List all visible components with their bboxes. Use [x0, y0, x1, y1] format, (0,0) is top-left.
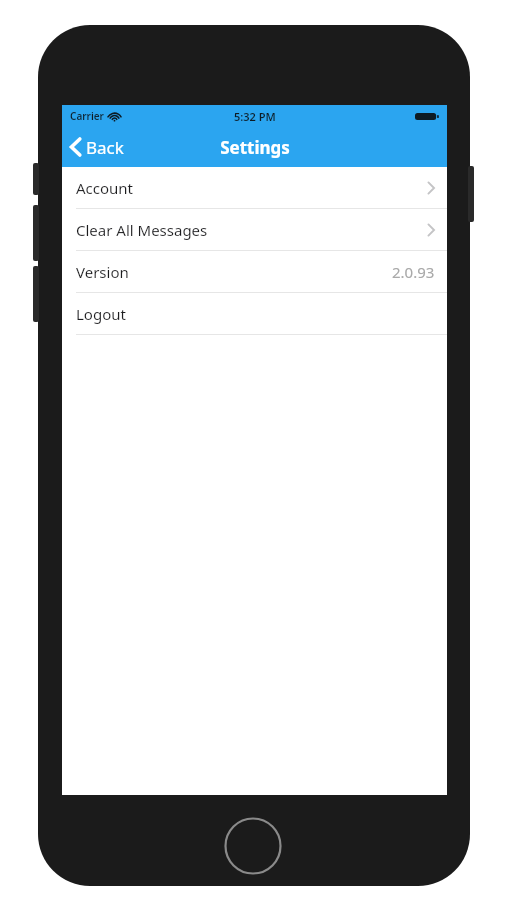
staticText: 2.0.93: [392, 262, 435, 282]
staticText: Logout: [76, 304, 126, 324]
button[interactable]: Clear All Messages: [62, 209, 447, 250]
staticText: Carrier: [70, 109, 104, 123]
button[interactable]: Version: [62, 251, 447, 292]
button[interactable]: Logout: [62, 293, 447, 334]
staticText: Back: [86, 136, 124, 159]
staticText: Clear All Messages: [76, 220, 208, 240]
staticText: 5:32 PM: [234, 109, 276, 124]
staticText: Settings: [220, 136, 290, 159]
staticText: Version: [76, 262, 129, 282]
button[interactable]: Account: [62, 167, 447, 208]
button[interactable]: Back: [62, 127, 134, 167]
staticText: Account: [76, 178, 134, 198]
